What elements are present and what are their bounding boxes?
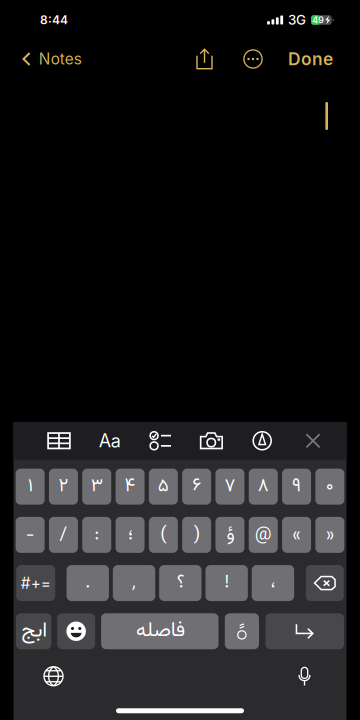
button[interactable]: Share	[187, 42, 221, 76]
button[interactable]: ابج	[16, 613, 51, 649]
staticText: »	[326, 520, 334, 549]
button[interactable]: )	[182, 517, 211, 553]
button[interactable]: »	[315, 517, 344, 553]
button[interactable]: ۲	[49, 469, 78, 505]
button[interactable]: !	[205, 565, 248, 601]
button[interactable]: ؟	[159, 565, 202, 601]
button[interactable]: ؛	[115, 517, 144, 553]
button[interactable]: -	[16, 517, 45, 553]
staticText: ۸	[258, 472, 269, 501]
staticText: (	[160, 520, 166, 549]
button[interactable]: .	[67, 565, 109, 601]
button[interactable]: ؤ	[215, 517, 244, 553]
button[interactable]: @	[249, 517, 278, 553]
button[interactable]: ۳	[82, 469, 111, 505]
button[interactable]: Notes	[13, 40, 89, 78]
button[interactable]: ۹	[282, 469, 311, 505]
staticText: 8:44	[40, 13, 68, 27]
staticText: ۵	[158, 472, 169, 501]
button[interactable]: Aa	[97, 426, 122, 456]
button[interactable]: ۷	[215, 469, 244, 505]
staticText: )	[194, 520, 200, 549]
staticText: -	[26, 520, 35, 549]
button[interactable]: ۸	[249, 469, 278, 505]
button[interactable]: ۱	[16, 469, 45, 505]
staticText: 49	[312, 15, 324, 25]
button[interactable]: :	[82, 517, 111, 553]
staticText: ۹	[292, 472, 301, 501]
button[interactable]: Done	[282, 40, 339, 78]
staticText: Notes	[39, 50, 82, 68]
staticText: ؛	[127, 520, 132, 549]
staticText: .	[85, 568, 90, 598]
button[interactable]: ۰	[315, 469, 344, 505]
button[interactable]: Camera	[199, 426, 224, 456]
staticText: @	[255, 520, 272, 549]
staticText: «	[293, 520, 301, 549]
staticText: ،	[270, 568, 275, 598]
button[interactable]: «	[282, 517, 311, 553]
staticText: /	[59, 520, 67, 549]
staticText: ٬	[132, 568, 137, 598]
staticText: ۶	[192, 472, 201, 501]
button[interactable]: Dictate	[290, 663, 318, 689]
staticText: ۷	[224, 472, 235, 501]
staticText: فاصله	[135, 615, 184, 647]
staticText: Done	[288, 48, 333, 69]
button[interactable]: Markup	[250, 426, 275, 456]
staticText: 3G	[288, 12, 306, 28]
button[interactable]: /	[49, 517, 78, 553]
button[interactable]: (	[149, 517, 178, 553]
button[interactable]	[225, 613, 259, 649]
button[interactable]	[57, 613, 95, 649]
button[interactable]: ۴	[115, 469, 144, 505]
staticText: ۳	[91, 472, 103, 501]
staticText: ؤ	[226, 520, 234, 549]
staticText: #+=	[21, 574, 51, 592]
button[interactable]: More options	[236, 42, 270, 76]
staticText: ۴	[124, 472, 135, 501]
button[interactable]: ،	[252, 565, 294, 601]
staticText: ۰	[326, 472, 334, 501]
button[interactable]: ۵	[149, 469, 178, 505]
button[interactable]: ۶	[182, 469, 211, 505]
staticText: Aa	[99, 430, 121, 452]
staticText: :	[94, 520, 99, 549]
staticText: ۱	[28, 472, 33, 501]
button[interactable]: Next keyboard	[39, 663, 67, 689]
button[interactable]: فاصله	[101, 613, 218, 649]
button[interactable]: #+=	[16, 565, 55, 601]
staticText: ابج	[21, 615, 47, 648]
staticText: ؟	[176, 568, 184, 598]
staticText: ۲	[58, 472, 68, 501]
button[interactable]: Close keyboard	[300, 426, 325, 456]
button[interactable]	[306, 565, 344, 601]
button[interactable]: Table	[46, 426, 71, 456]
button[interactable]	[265, 613, 344, 649]
button[interactable]: ٬	[113, 565, 155, 601]
staticText: !	[224, 568, 229, 598]
button[interactable]: Checklist	[148, 426, 173, 456]
